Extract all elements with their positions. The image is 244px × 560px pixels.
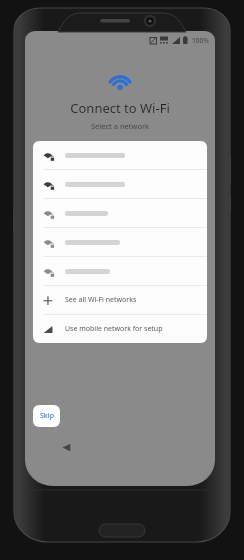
staticText: 100% <box>192 36 209 45</box>
button[interactable]: Wi-Fi network <box>33 141 207 169</box>
button[interactable]: Use mobile network for setup <box>33 315 207 343</box>
staticText: Connect to Wi-Fi <box>25 99 215 117</box>
button[interactable]: See all Wi-Fi networks <box>33 286 207 314</box>
button[interactable]: Wi-Fi network <box>33 170 207 198</box>
button[interactable]: Wi-Fi network <box>33 199 207 227</box>
button[interactable]: Wi-Fi network <box>33 257 207 285</box>
button[interactable]: Back <box>58 439 74 455</box>
button[interactable]: Wi-Fi network <box>33 228 207 256</box>
staticText: See all Wi-Fi networks <box>65 295 137 305</box>
staticText: Skip <box>40 411 54 421</box>
button[interactable]: Skip <box>33 405 60 427</box>
staticText: Use mobile network for setup <box>65 324 163 334</box>
staticText: Select a network <box>25 121 215 131</box>
